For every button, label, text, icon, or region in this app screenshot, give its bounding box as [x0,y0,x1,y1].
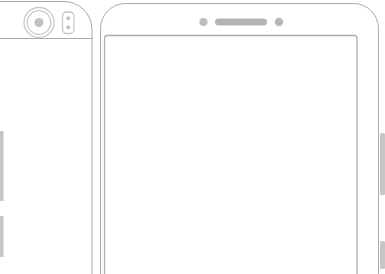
other: Phone device outlines: camera back and s… [0,0,385,274]
